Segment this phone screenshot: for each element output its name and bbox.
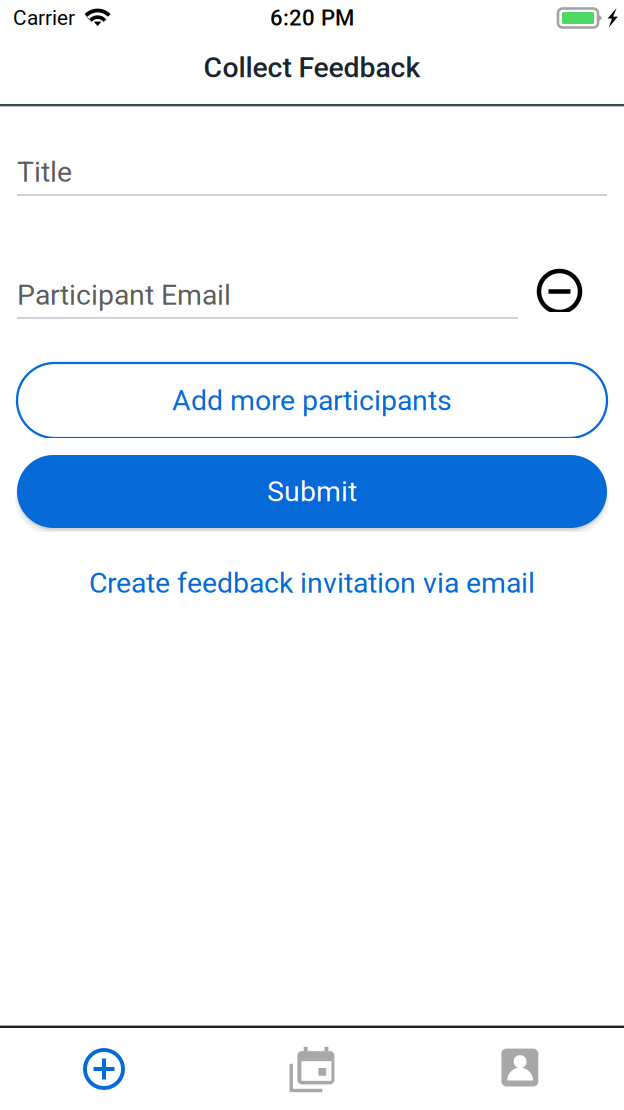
button[interactable]: Profile (416, 1028, 624, 1110)
staticText: 6:20 PM (270, 5, 354, 31)
staticText: Participant Email (17, 278, 231, 312)
button[interactable]: Submit (12, 451, 612, 532)
button[interactable]: Create (0, 1028, 208, 1110)
staticText: Title (17, 155, 72, 189)
staticText: Collect Feedback (203, 51, 420, 84)
staticText: Create feedback invitation via email (89, 566, 535, 600)
button[interactable]: Add more participants (17, 363, 607, 438)
button[interactable]: Sessions (208, 1028, 416, 1110)
staticText: Add more participants (172, 384, 452, 417)
staticText: Submit (267, 475, 357, 508)
button[interactable]: Remove participant (539, 271, 580, 312)
button[interactable]: Create feedback invitation via email (17, 566, 607, 600)
staticText: Carrier (13, 6, 75, 30)
